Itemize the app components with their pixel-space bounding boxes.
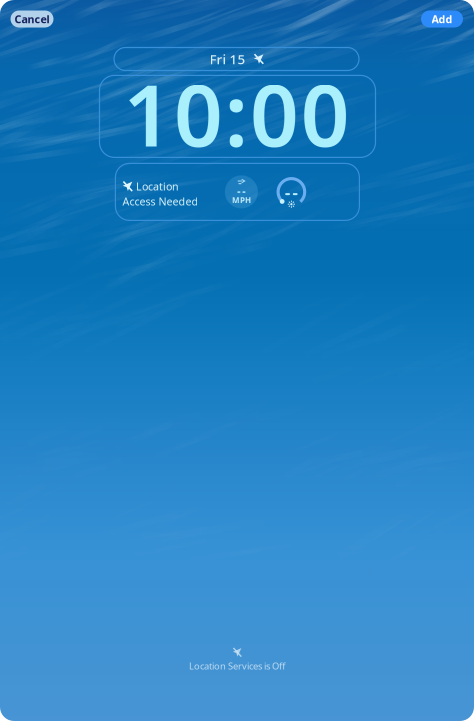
button[interactable]: Add	[421, 10, 463, 27]
staticText: Location Services is Off	[189, 660, 285, 672]
staticText: Fri 15	[209, 50, 245, 68]
staticText: MPH	[232, 195, 251, 205]
staticText: Cancel	[14, 12, 49, 26]
staticText: Location	[136, 179, 179, 193]
staticText: 10:00	[123, 57, 350, 170]
staticText: Add	[431, 12, 452, 26]
button[interactable]: Location	[115, 163, 359, 220]
staticText: Access Needed	[122, 194, 198, 209]
button[interactable]: 10:00	[101, 76, 373, 157]
button[interactable]: Cancel	[10, 10, 53, 27]
button[interactable]: Fri 15	[114, 47, 359, 70]
